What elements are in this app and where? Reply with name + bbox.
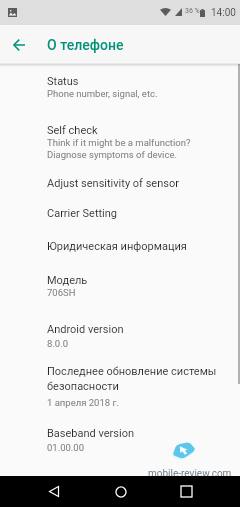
button[interactable]: Carrier Setting bbox=[47, 207, 118, 220]
button[interactable]: Diagnose symptoms of device. bbox=[47, 149, 177, 160]
button[interactable]: 8.0.0 bbox=[47, 338, 69, 349]
button[interactable]: Phone number, signal, etc. bbox=[47, 88, 158, 99]
button[interactable]: 01.00.00 bbox=[47, 442, 85, 453]
button[interactable]: Back bbox=[36, 476, 71, 507]
button[interactable]: Модель bbox=[47, 274, 88, 287]
button[interactable]: Baseband version bbox=[47, 427, 135, 440]
button[interactable]: Status bbox=[47, 75, 79, 88]
staticText: О телефоне bbox=[47, 37, 124, 53]
button[interactable]: 706SH bbox=[47, 287, 76, 298]
button[interactable]: 1 апреля 2018 г. bbox=[47, 397, 119, 408]
button[interactable]: Adjust sensitivity of sensor bbox=[47, 177, 179, 190]
button[interactable]: Think if it might be a malfunction? bbox=[47, 137, 191, 148]
button[interactable]: Recent apps bbox=[169, 476, 204, 507]
button[interactable]: Back bbox=[0, 26, 38, 63]
button[interactable]: Android version bbox=[47, 323, 124, 336]
button[interactable]: Последнее обновление системы bbox=[47, 365, 217, 378]
button[interactable]: Юридическая информация bbox=[47, 240, 187, 253]
button[interactable]: безопасности bbox=[47, 380, 119, 393]
staticText: 36 % bbox=[185, 7, 200, 15]
button[interactable]: Home bbox=[103, 476, 138, 507]
button[interactable]: Self check bbox=[47, 124, 98, 137]
staticText: mobile-review.com bbox=[148, 468, 232, 480]
staticText: 14:00 bbox=[211, 7, 236, 19]
